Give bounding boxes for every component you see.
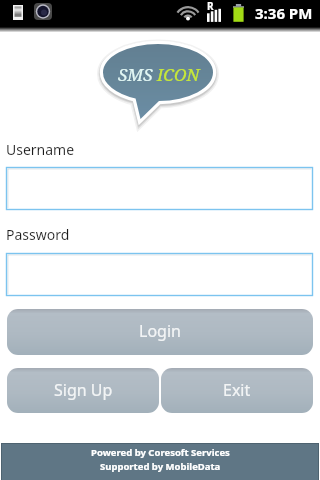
button[interactable]: Username input (6, 167, 313, 210)
staticText: Username (6, 140, 75, 159)
staticText: ICON (157, 63, 200, 86)
button[interactable]: Powered by Coresoft Services (1, 443, 319, 480)
other: Camera (34, 3, 52, 20)
button[interactable]: Password input (6, 253, 313, 296)
button[interactable]: Login (7, 309, 313, 355)
other: Wi-Fi (178, 5, 198, 21)
button[interactable]: Sign Up (7, 368, 159, 413)
staticText: Exit (223, 379, 251, 401)
staticText: Password (6, 225, 70, 244)
other: Battery full (233, 4, 244, 22)
staticText: SMS (118, 63, 157, 86)
other: Signal strength, roaming (207, 1, 223, 22)
staticText: Sign Up (54, 379, 113, 401)
staticText: R (207, 0, 214, 13)
staticText: Login (139, 320, 181, 342)
staticText: Powered by Coresoft Services (91, 446, 230, 459)
other: SMS ICON logo (92, 34, 228, 130)
staticText: Supported by MobileData (100, 460, 221, 473)
button[interactable]: Exit (161, 368, 313, 413)
staticText: 3:36 PM (255, 3, 313, 23)
other: SD card (13, 5, 23, 20)
